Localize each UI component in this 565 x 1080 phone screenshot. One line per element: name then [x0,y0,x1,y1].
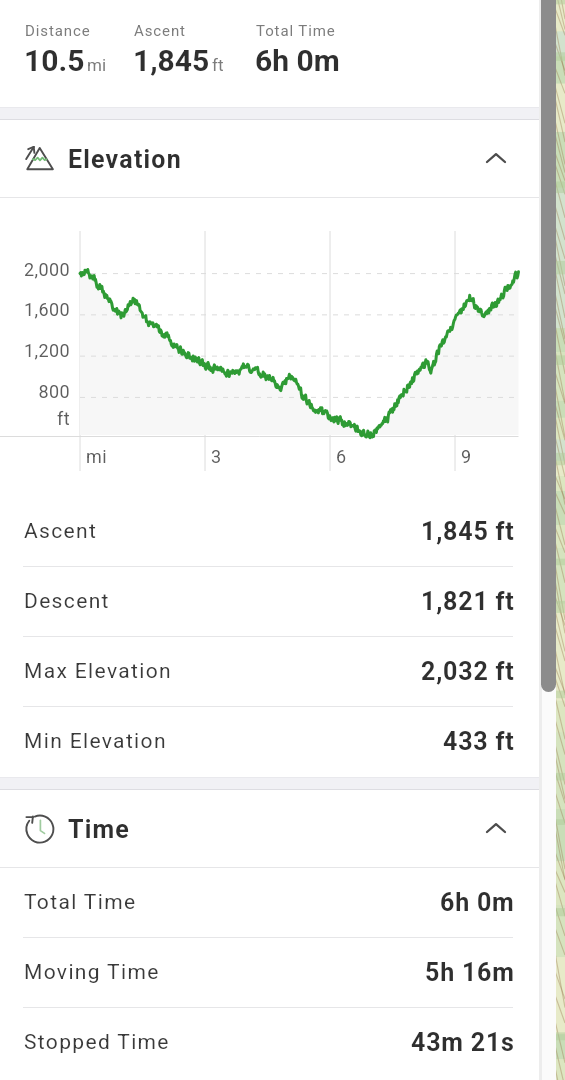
staticText: 3 [211,446,222,467]
button[interactable]: Ascent [0,497,539,567]
staticText: 433 ft [443,727,515,756]
button[interactable]: Elevation [0,120,539,197]
staticText: 2,000 [0,259,70,280]
staticText: 43m 21s [411,1028,515,1057]
staticText: mi [87,55,107,75]
staticText: 1,845 [133,43,210,78]
staticText: Descent [24,589,110,614]
staticText: 5h 16m [425,958,515,987]
staticText: Min Elevation [24,729,167,754]
staticText: 1,200 [0,340,70,361]
staticText: Time [68,815,131,844]
staticText: 2,032 ft [421,657,515,686]
button[interactable]: Min Elevation [0,707,539,777]
staticText: ft [0,408,70,429]
staticText: Moving Time [24,960,160,985]
staticText: ft [212,55,224,75]
staticText: Max Elevation [24,659,172,684]
button[interactable]: Time [0,790,539,867]
staticText: 9 [461,446,472,467]
staticText: 1,821 ft [421,587,515,616]
other: Collapse Time [472,805,520,853]
button[interactable]: Descent [0,567,539,637]
staticText: 1,845 ft [421,517,515,546]
staticText: Distance [25,22,91,40]
staticText: mi [86,446,107,467]
staticText: 10.5 [24,43,85,78]
staticText: 800 [0,381,70,402]
other: Collapse Elevation [472,135,520,183]
other: Scrollbar [541,0,556,692]
button[interactable]: Total Time [0,868,539,938]
staticText: Elevation [68,145,182,174]
staticText: Stopped Time [24,1030,170,1055]
staticText: Total Time [256,22,336,40]
staticText: 6 [336,446,347,467]
staticText: 6h 0m [440,888,515,917]
staticText: Total Time [24,890,137,915]
staticText: Ascent [134,22,186,40]
staticText: 1,600 [0,299,70,320]
button[interactable]: Max Elevation [0,637,539,707]
button[interactable]: Moving Time [0,938,539,1008]
staticText: 6h 0m [255,43,340,78]
button[interactable]: Stopped Time [0,1008,539,1078]
staticText: Ascent [24,519,98,544]
